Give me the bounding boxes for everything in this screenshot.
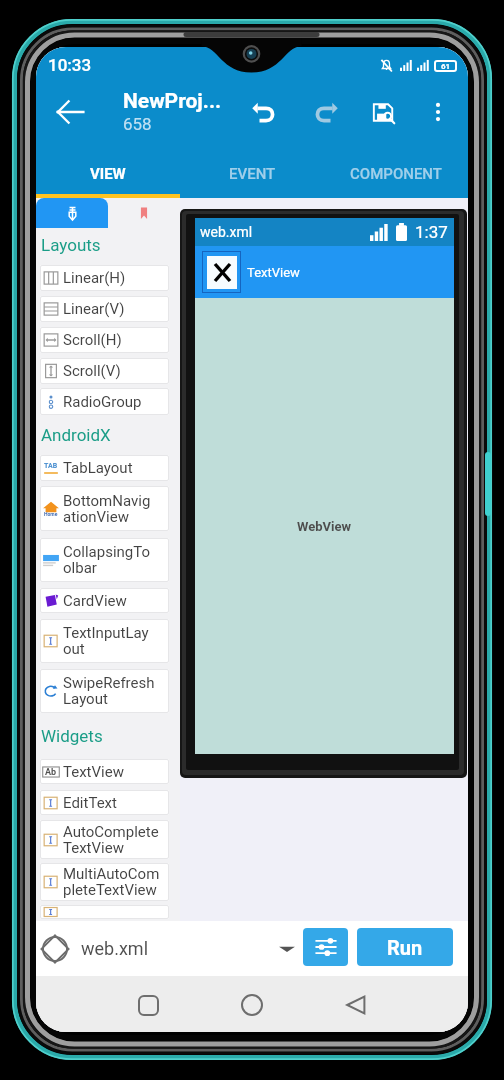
staticText: BottomNavig ationView [63, 492, 151, 526]
staticText: SwipeRefresh Layout [63, 674, 155, 708]
button[interactable]: Ab [40, 759, 169, 784]
button[interactable]: Widgets palette [36, 198, 108, 228]
staticText: Layouts [41, 235, 101, 255]
button[interactable]: NewProj... [123, 89, 243, 134]
button[interactable]: Run [357, 928, 453, 966]
button[interactable]: AutoComplete TextView [40, 820, 169, 859]
staticText: TabLayout [63, 459, 133, 477]
staticText: Linear(V) [63, 300, 125, 318]
staticText: VIEW [90, 165, 126, 183]
staticText: TextView [63, 763, 124, 781]
button[interactable]: Settings [303, 928, 348, 966]
button[interactable]: TAB [40, 455, 169, 481]
button[interactable]: EditText [40, 790, 169, 815]
staticText: Linear(H) [63, 269, 126, 287]
staticText: Scroll(V) [63, 362, 121, 380]
staticText: web.xml [81, 938, 149, 959]
staticText: CardView [63, 592, 127, 610]
button[interactable]: CollapsingTo olbar [40, 538, 169, 582]
button[interactable]: VIEW [36, 140, 180, 194]
button[interactable]: Linear(H) [40, 265, 169, 291]
staticText: web.xml [200, 224, 253, 240]
button[interactable]: web.xml [40, 921, 296, 976]
button[interactable]: Home [40, 486, 169, 531]
button[interactable]: CardView [40, 588, 169, 613]
staticText: TAB [44, 462, 58, 470]
staticText: EVENT [229, 165, 276, 183]
button[interactable]: EVENT [180, 140, 324, 194]
button[interactable]: Favourites [108, 198, 180, 228]
button[interactable]: MultiAutoCom pleteTextView [40, 863, 169, 901]
staticText: 10:33 [48, 55, 92, 75]
staticText: RadioGroup [63, 393, 142, 411]
staticText: COMPONENT [350, 165, 442, 183]
button[interactable]: TextInputLay out [40, 619, 169, 663]
staticText: NewProj... [123, 89, 222, 114]
button[interactable]: Scroll(V) [40, 358, 169, 384]
staticText: 658 [123, 114, 152, 134]
staticText: TextView [247, 265, 300, 280]
button[interactable]: RadioGroup [40, 388, 169, 415]
button[interactable]: Back [330, 979, 382, 1031]
button[interactable]: Home [226, 979, 278, 1031]
button[interactable]: Save [359, 88, 407, 136]
staticText: Widgets [41, 726, 103, 746]
button[interactable]: COMPONENT [324, 140, 468, 194]
staticText: Ab [45, 767, 57, 778]
button[interactable]: Redo [302, 88, 350, 136]
button[interactable] [40, 905, 169, 919]
button[interactable]: Undo [239, 88, 287, 136]
button[interactable]: Scroll(H) [40, 327, 169, 353]
staticText: AndroidX [41, 425, 111, 445]
staticText: 1:37 [415, 222, 448, 242]
staticText: Scroll(H) [63, 331, 122, 349]
staticText: Home [44, 511, 58, 517]
staticText: EditText [63, 794, 117, 812]
staticText: 61 [441, 62, 451, 71]
staticText: MultiAutoCom pleteTextView [63, 865, 160, 899]
staticText: CollapsingTo olbar [63, 543, 151, 577]
button[interactable]: Linear(V) [40, 296, 169, 322]
staticText: TextInputLay out [63, 624, 149, 658]
staticText: AutoComplete TextView [63, 823, 159, 857]
button[interactable]: SwipeRefresh Layout [40, 669, 169, 713]
staticText: Run [387, 936, 423, 959]
button[interactable]: Recents [122, 979, 174, 1031]
staticText: WebView [297, 519, 352, 534]
button[interactable]: More options [421, 95, 455, 129]
button[interactable]: Back [46, 88, 94, 136]
